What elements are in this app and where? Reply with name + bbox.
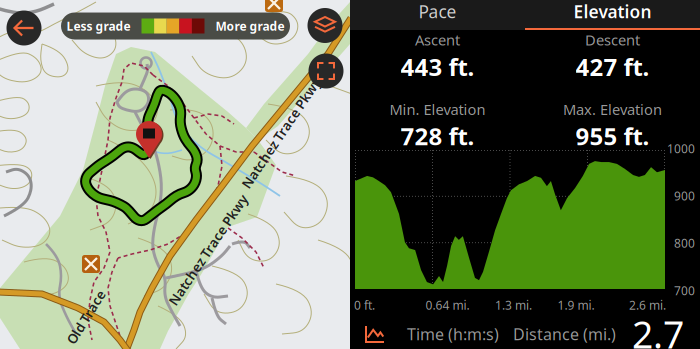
staticText: Elevation (573, 0, 651, 23)
staticText: Time (h:m:s) (407, 323, 499, 345)
staticText: 2.7 (632, 309, 684, 349)
staticText: Max. Elevation (563, 99, 662, 119)
staticText: Old Trace (55, 308, 116, 326)
staticText: 728 ft. (400, 120, 474, 152)
staticText: 1.3 mi. (495, 297, 532, 313)
staticText: More grade (215, 18, 284, 34)
staticText: Natchez Trace Pkwy (216, 124, 346, 142)
staticText: 700 (674, 282, 695, 298)
staticText: 1.9 mi. (557, 297, 594, 313)
staticText: Less grade (66, 18, 130, 34)
staticText: 427 ft. (575, 51, 649, 82)
button[interactable]: Chart (366, 326, 384, 342)
staticText: 0 ft. (354, 297, 375, 313)
staticText: 0.64 mi. (425, 297, 469, 313)
staticText: 955 ft. (575, 120, 649, 152)
staticText: 2.6 mi. (629, 297, 666, 313)
button[interactable]: Back (6, 10, 41, 45)
button[interactable]: Pace (350, 0, 525, 30)
staticText: Pace (418, 0, 456, 23)
staticText: 443 ft. (400, 51, 474, 82)
staticText: Min. Elevation (389, 99, 485, 119)
staticText: 900 (674, 188, 695, 204)
button[interactable]: Elevation (525, 0, 700, 30)
staticText: Descent (585, 30, 640, 50)
staticText: 800 (674, 235, 695, 251)
staticText: Ascent (415, 30, 460, 50)
staticText: Natchez Trace Pkwy (143, 241, 273, 259)
button[interactable]: Layers (307, 8, 342, 43)
button[interactable]: Full screen (308, 53, 343, 88)
staticText: Distance (mi.) (513, 323, 616, 345)
staticText: 1000 (667, 140, 695, 156)
